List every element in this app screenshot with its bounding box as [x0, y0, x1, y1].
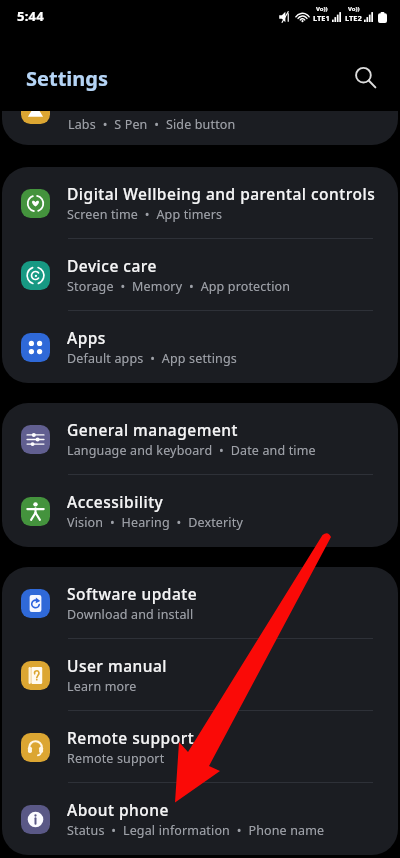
staticText: Device care — [67, 255, 157, 276]
staticText: Download and install — [67, 606, 194, 623]
staticText: About phone — [67, 799, 169, 820]
button[interactable]: Digital Wellbeing and parental controls — [2, 167, 398, 239]
staticText: General management — [67, 419, 238, 440]
staticText: Vo)) — [316, 5, 328, 13]
button[interactable]: Search — [344, 56, 386, 98]
staticText: Remote support — [67, 750, 165, 767]
staticText: Vision • Hearing • Dexterity — [67, 514, 243, 531]
staticText: LTE2 — [345, 13, 362, 23]
staticText: Storage • Memory • App protection — [67, 278, 291, 295]
staticText: LTE1 — [313, 13, 330, 23]
button[interactable]: Labs • S Pen • Side button — [2, 111, 398, 145]
staticText: User manual — [67, 655, 167, 676]
button[interactable]: Software update — [2, 567, 398, 639]
staticText: Default apps • App settings — [67, 350, 237, 367]
staticText: Remote support — [67, 727, 195, 748]
staticText: 5:44 — [17, 7, 44, 25]
button[interactable]: Accessibility — [2, 475, 398, 547]
button[interactable]: User manual — [2, 639, 398, 711]
button[interactable]: About phone — [2, 783, 398, 855]
button[interactable]: General management — [2, 403, 398, 475]
button[interactable]: Apps — [2, 311, 398, 383]
button[interactable]: Device care — [2, 239, 398, 311]
staticText: Apps — [67, 327, 106, 348]
staticText: Screen time • App timers — [67, 206, 223, 223]
staticText: Software update — [67, 583, 198, 604]
staticText: Learn more — [67, 678, 137, 695]
staticText: Digital Wellbeing and parental controls — [67, 183, 376, 204]
staticText: Labs • S Pen • Side button — [68, 116, 236, 133]
staticText: Language and keyboard • Date and time — [67, 442, 316, 459]
staticText: Vo)) — [348, 5, 360, 13]
staticText: Settings — [26, 65, 108, 92]
staticText: Status • Legal information • Phone name — [67, 822, 325, 839]
button[interactable]: Remote support — [2, 711, 398, 783]
staticText: Accessibility — [67, 491, 164, 512]
